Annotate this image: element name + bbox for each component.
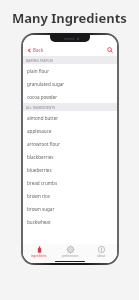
- staticText: bread crumbs: [27, 180, 58, 186]
- staticText: about: [97, 254, 106, 258]
- staticText: almond butter: [27, 115, 59, 121]
- button[interactable]: brown sugar: [23, 202, 117, 215]
- button[interactable]: about: [86, 244, 117, 259]
- button[interactable]: arrowroot flour: [23, 137, 117, 150]
- staticText: buckwheat: [27, 219, 51, 225]
- button[interactable]: plain flour: [23, 64, 117, 77]
- staticText: arrowroot flour: [27, 141, 61, 147]
- staticText: brown sugar: [27, 206, 55, 212]
- button[interactable]: preferences: [55, 244, 86, 259]
- button[interactable]: applesauce: [23, 124, 117, 137]
- button[interactable]: blueberries: [23, 163, 117, 176]
- staticText: BAKING STAPLES: [26, 58, 54, 63]
- button[interactable]: cocoa powder: [23, 90, 117, 103]
- button[interactable]: blackberries: [23, 150, 117, 163]
- button[interactable]: Search: [105, 45, 114, 54]
- button[interactable]: ingredients: [23, 244, 55, 259]
- staticText: blackberries: [27, 154, 54, 160]
- button[interactable]: brown rice: [23, 189, 117, 202]
- staticText: ingredients: [31, 254, 47, 258]
- staticText: cocoa powder: [27, 94, 58, 100]
- staticText: plain flour: [27, 68, 50, 74]
- button[interactable]: Back: [26, 46, 45, 54]
- button[interactable]: bread crumbs: [23, 176, 117, 189]
- button[interactable]: buckwheat: [23, 215, 117, 228]
- staticText: brown rice: [27, 193, 50, 199]
- staticText: granulated sugar: [27, 81, 65, 87]
- button[interactable]: almond butter: [23, 111, 117, 124]
- staticText: blueberries: [27, 167, 52, 173]
- staticText: preferences: [62, 254, 79, 258]
- staticText: ALL INGREDIENTS: [26, 105, 56, 110]
- staticText: Many Ingredients: [12, 9, 127, 27]
- staticText: applesauce: [27, 128, 52, 134]
- staticText: Back: [33, 47, 44, 53]
- button[interactable]: granulated sugar: [23, 77, 117, 90]
